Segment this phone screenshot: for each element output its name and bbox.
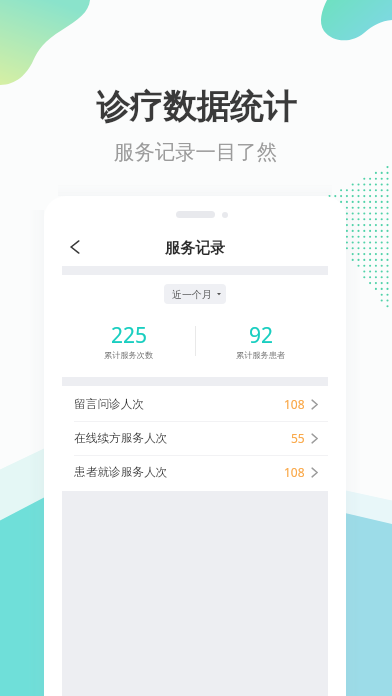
button[interactable]: Back <box>62 234 88 260</box>
staticText: 在线续方服务人次 <box>74 431 168 446</box>
staticText: 患者就诊服务人次 <box>74 465 168 480</box>
staticText: 留言问诊人次 <box>74 397 145 412</box>
staticText: 诊疗数据统计 <box>96 86 297 128</box>
staticText: 92 <box>249 321 274 350</box>
staticText: 55 <box>291 430 305 446</box>
staticText: 服务记录一目了然 <box>114 139 278 165</box>
staticText: 服务记录 <box>165 239 225 258</box>
staticText: 近一个月 <box>172 288 212 301</box>
staticText: 累计服务次数 <box>104 350 154 360</box>
button[interactable]: 患者就诊服务人次 <box>44 455 346 489</box>
button[interactable]: 在线续方服务人次 <box>44 421 346 455</box>
button[interactable]: 留言问诊人次 <box>44 387 346 421</box>
staticText: 108 <box>284 464 305 480</box>
staticText: 108 <box>284 396 305 412</box>
button[interactable]: 近一个月 <box>164 284 226 304</box>
staticText: 累计服务患者 <box>236 350 286 360</box>
staticText: 225 <box>111 321 148 350</box>
